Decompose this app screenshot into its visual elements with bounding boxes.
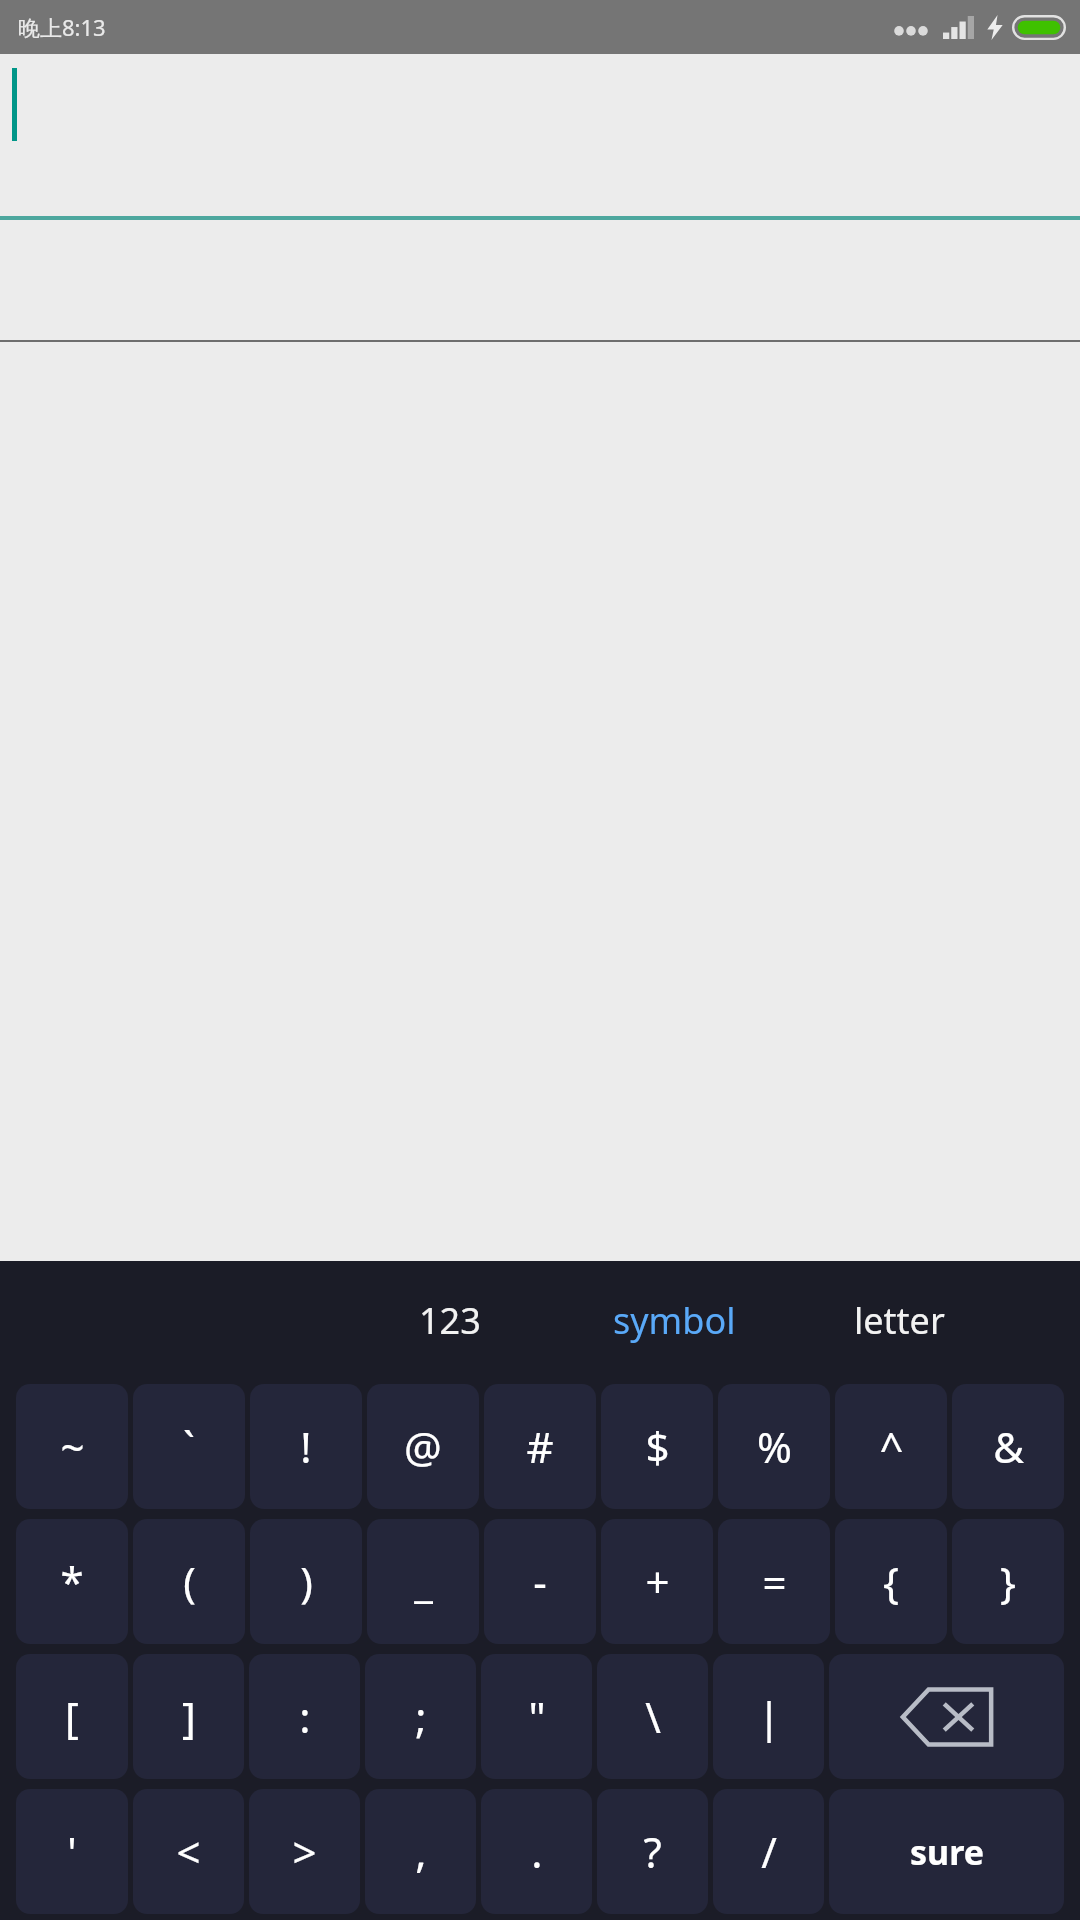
button[interactable]: #	[484, 1384, 596, 1509]
staticText: $	[645, 1418, 670, 1475]
button[interactable]: :	[249, 1654, 360, 1779]
staticText: !	[300, 1418, 312, 1475]
staticText: ~	[60, 1418, 85, 1475]
button[interactable]: =	[718, 1519, 830, 1644]
button[interactable]: [	[16, 1654, 128, 1779]
staticText: sure	[910, 1829, 984, 1875]
button[interactable]: }	[952, 1519, 1064, 1644]
staticText: <	[176, 1823, 201, 1880]
button[interactable]: ^	[835, 1384, 947, 1509]
button[interactable]: ~	[16, 1384, 128, 1509]
staticText: :	[299, 1688, 311, 1745]
staticText: {	[883, 1553, 899, 1610]
button[interactable]: /	[713, 1789, 824, 1914]
staticText: #	[526, 1418, 554, 1475]
staticText: (	[183, 1553, 196, 1610]
staticText: `	[183, 1418, 195, 1475]
staticText: _	[414, 1553, 433, 1610]
staticText: 123	[419, 1296, 481, 1345]
staticText: /	[761, 1823, 777, 1880]
staticText: |	[757, 1688, 781, 1745]
button[interactable]: letter	[787, 1261, 1012, 1379]
button[interactable]: \	[597, 1654, 708, 1779]
button[interactable]: `	[133, 1384, 245, 1509]
button[interactable]	[0, 54, 1080, 1261]
button[interactable]: )	[250, 1519, 362, 1644]
button[interactable]: _	[367, 1519, 479, 1644]
staticText: \	[645, 1688, 661, 1745]
button[interactable]: ?	[597, 1789, 708, 1914]
staticText: *	[60, 1553, 84, 1610]
button[interactable]: &	[952, 1384, 1064, 1509]
button[interactable]: '	[16, 1789, 128, 1914]
staticText: ;	[415, 1688, 427, 1745]
staticText: '	[67, 1823, 77, 1880]
button[interactable]: symbol	[562, 1261, 787, 1379]
button[interactable]: .	[481, 1789, 592, 1914]
staticText: +	[645, 1553, 670, 1610]
button[interactable]: *	[16, 1519, 128, 1644]
button[interactable]: sure	[829, 1789, 1064, 1914]
button[interactable]: 123	[337, 1261, 562, 1379]
button[interactable]: (	[133, 1519, 245, 1644]
button[interactable]: <	[133, 1789, 244, 1914]
button[interactable]: -	[484, 1519, 596, 1644]
staticText: =	[762, 1553, 787, 1610]
staticText: &	[993, 1418, 1024, 1475]
staticText: -	[533, 1553, 547, 1610]
staticText: >	[292, 1823, 317, 1880]
staticText: ?	[643, 1823, 662, 1880]
button[interactable]: +	[601, 1519, 713, 1644]
staticText: symbol	[613, 1296, 736, 1345]
staticText: 晚上8:13	[18, 12, 106, 42]
staticText: ]	[182, 1688, 196, 1745]
button[interactable]: |	[713, 1654, 824, 1779]
staticText: %	[757, 1418, 792, 1475]
staticText: [	[65, 1688, 79, 1745]
staticText: )	[300, 1553, 313, 1610]
button[interactable]: $	[601, 1384, 713, 1509]
staticText: .	[531, 1823, 543, 1880]
button[interactable]: !	[250, 1384, 362, 1509]
button[interactable]: @	[367, 1384, 479, 1509]
button[interactable]: Backspace	[829, 1654, 1064, 1779]
staticText: ,	[415, 1823, 427, 1880]
button[interactable]: {	[835, 1519, 947, 1644]
staticText: }	[1000, 1553, 1016, 1610]
button[interactable]: ;	[365, 1654, 476, 1779]
staticText: @	[404, 1418, 442, 1475]
staticText: "	[528, 1688, 546, 1745]
staticText: letter	[854, 1296, 945, 1345]
staticText: ^	[879, 1418, 904, 1475]
button[interactable]: >	[249, 1789, 360, 1914]
button[interactable]: %	[718, 1384, 830, 1509]
button[interactable]: "	[481, 1654, 592, 1779]
button[interactable]: ]	[133, 1654, 244, 1779]
button[interactable]: ,	[365, 1789, 476, 1914]
